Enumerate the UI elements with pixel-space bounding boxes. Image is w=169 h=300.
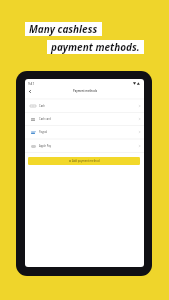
button[interactable]: Cash card	[25, 112, 144, 125]
staticText: 9:41	[28, 82, 35, 86]
button[interactable]: Cash	[25, 99, 144, 112]
staticText: Paypal	[39, 130, 48, 134]
button[interactable]: Add payment method	[28, 157, 140, 165]
staticText: payment methods.	[51, 40, 140, 54]
button[interactable]: Back	[25, 85, 35, 98]
staticText: Cash card	[39, 117, 51, 121]
staticText: Many cashless	[29, 22, 98, 36]
button[interactable]: Apple Pay	[25, 139, 144, 152]
staticText: Add payment method	[72, 159, 100, 163]
button[interactable]: Paypal	[25, 125, 144, 138]
staticText: Apple Pay	[39, 144, 52, 148]
staticText: Payment methods	[73, 89, 97, 93]
staticText: Cash	[39, 104, 45, 108]
